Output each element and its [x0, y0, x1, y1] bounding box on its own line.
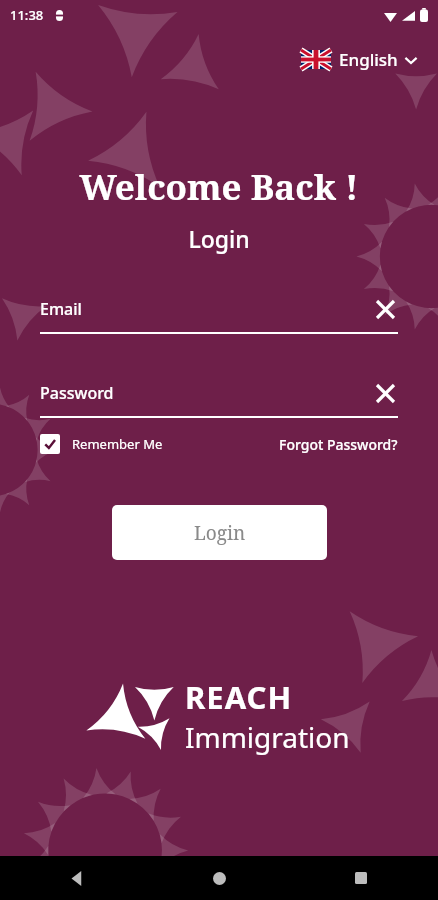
staticText: Login: [194, 520, 246, 546]
button[interactable]: Back: [60, 861, 94, 895]
staticText: REACH: [185, 676, 293, 718]
button[interactable]: Forgot Password?: [279, 435, 398, 454]
button[interactable]: Clear Password: [372, 380, 398, 406]
staticText: Password: [40, 382, 114, 404]
button[interactable]: Login: [112, 505, 327, 560]
button[interactable]: Clear Email: [372, 296, 398, 322]
staticText: Immigration: [185, 718, 350, 756]
button[interactable]: Recents: [344, 861, 378, 895]
staticText: English: [339, 48, 398, 71]
staticText: 11:38: [10, 6, 44, 24]
button[interactable]: English: [297, 44, 422, 75]
staticText: Remember Me: [72, 435, 163, 453]
button[interactable]: Remember Me: [40, 434, 163, 454]
button[interactable]: Password: [40, 380, 398, 406]
button[interactable]: Email: [40, 296, 398, 322]
staticText: Email: [40, 298, 82, 320]
staticText: Login: [0, 223, 438, 254]
button[interactable]: Home: [202, 861, 236, 895]
staticText: Welcome Back !: [0, 163, 438, 211]
